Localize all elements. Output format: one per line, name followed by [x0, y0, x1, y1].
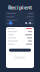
button[interactable] — [9, 49, 31, 52]
staticText: Details — [14, 55, 26, 60]
button[interactable]: More — [29, 22, 31, 24]
button[interactable]: App — [9, 21, 12, 25]
staticText: Recipient — [8, 4, 32, 11]
button[interactable]: Search — [25, 22, 27, 24]
